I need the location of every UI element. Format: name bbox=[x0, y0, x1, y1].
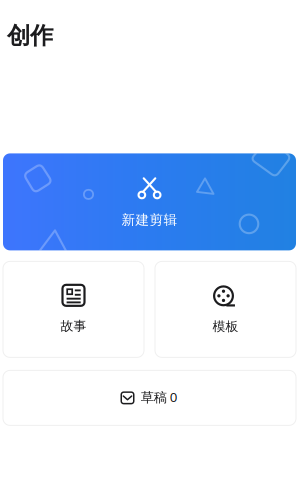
button[interactable]: 新建剪辑 bbox=[3, 153, 296, 250]
button[interactable]: 模板 bbox=[155, 261, 296, 357]
staticText: 创作 bbox=[7, 21, 53, 50]
staticText: 草稿 0 bbox=[141, 388, 178, 406]
staticText: 故事 bbox=[60, 318, 86, 334]
button[interactable]: 草稿 0 bbox=[3, 370, 296, 425]
button[interactable]: 故事 bbox=[3, 261, 144, 357]
staticText: 新建剪辑 bbox=[121, 211, 177, 228]
staticText: 模板 bbox=[212, 318, 238, 334]
